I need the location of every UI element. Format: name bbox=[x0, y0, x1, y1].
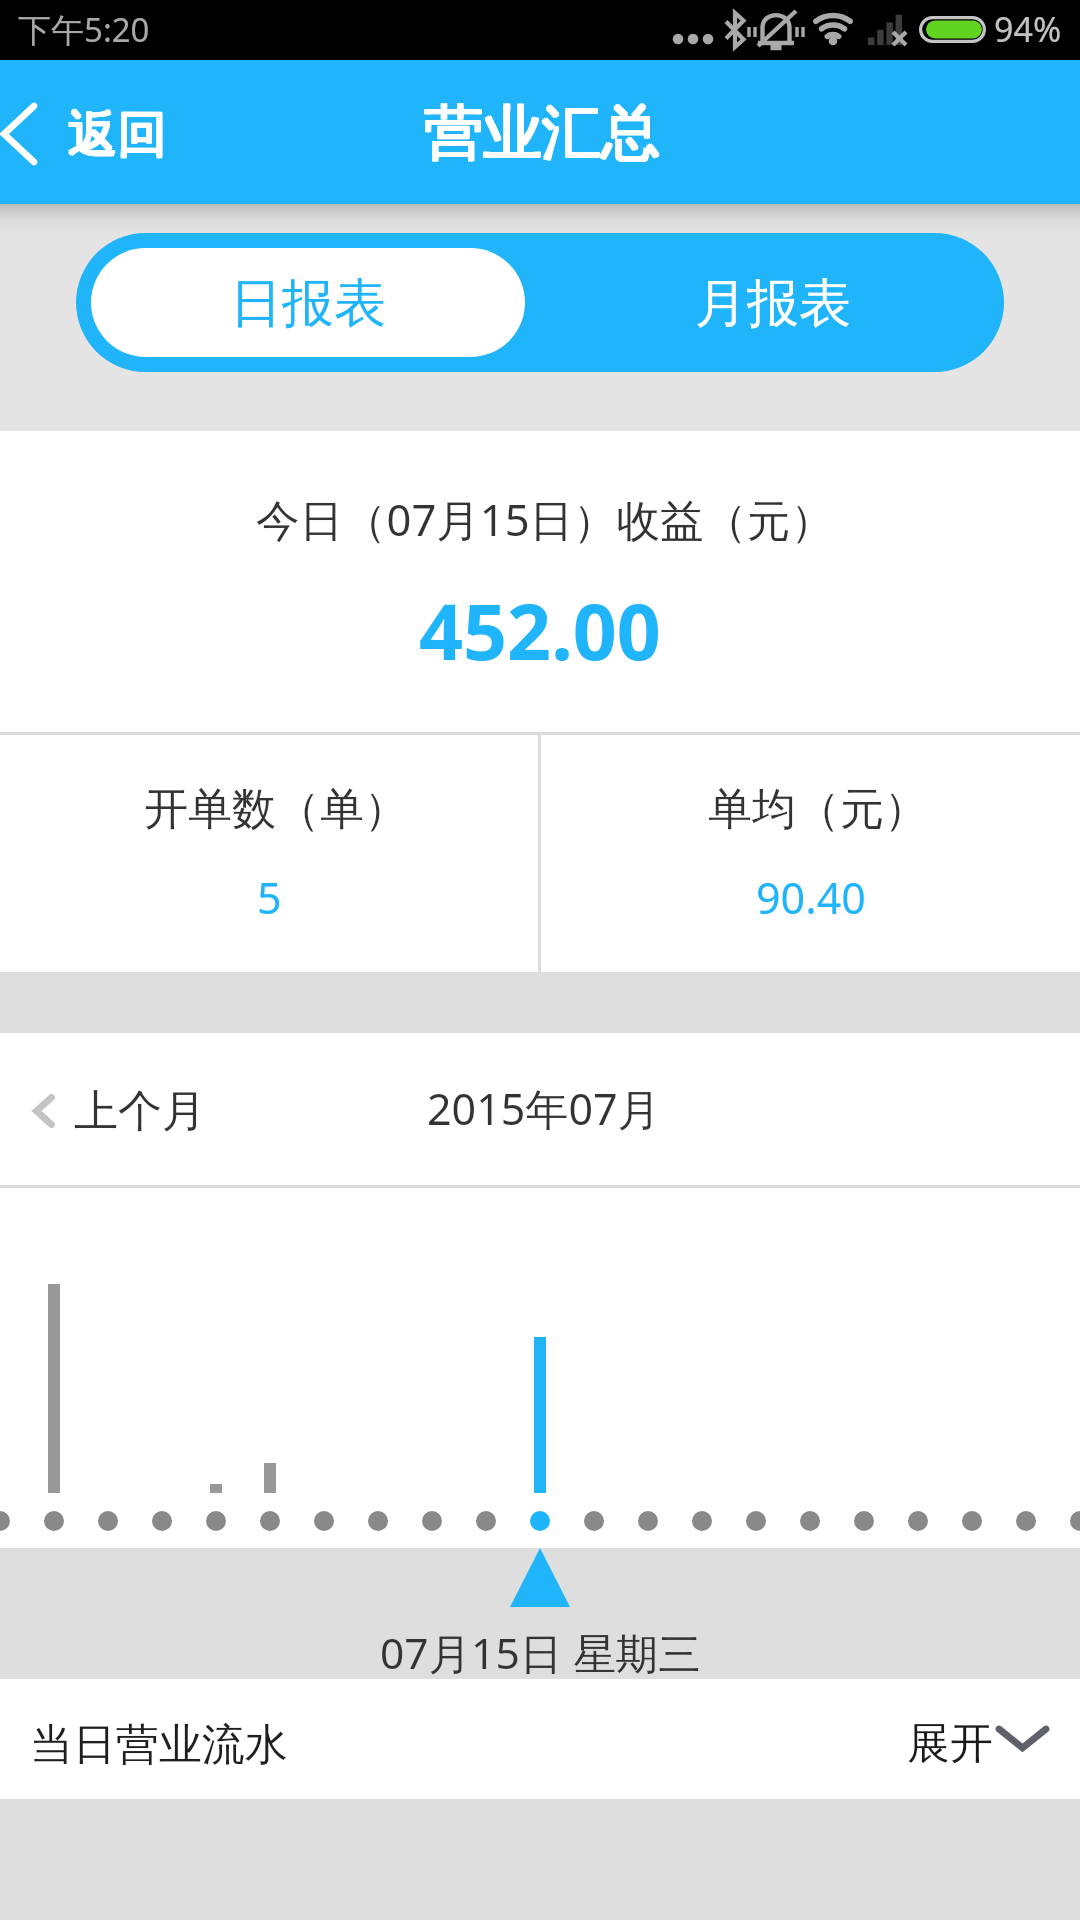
button[interactable]: 月报表 bbox=[540, 248, 989, 357]
staticText: 5 bbox=[257, 868, 282, 927]
staticText: 营业汇总 bbox=[425, 95, 661, 169]
other: Previous month bbox=[33, 1094, 55, 1128]
staticText: 月报表 bbox=[695, 271, 851, 337]
button[interactable]: 单均（元） bbox=[541, 735, 1080, 972]
staticText: 07月15日 星期三 bbox=[380, 1624, 701, 1682]
staticText: 452.00 bbox=[419, 578, 661, 683]
staticText: 营业汇总 bbox=[423, 95, 659, 169]
button[interactable]: Back bbox=[0, 60, 166, 204]
staticText: 返回 bbox=[69, 104, 168, 166]
staticText: 返回 bbox=[67, 104, 166, 166]
staticText: 返回 bbox=[67, 102, 166, 164]
staticText: 上个月 bbox=[74, 1084, 206, 1139]
staticText: 返回 bbox=[69, 102, 168, 164]
staticText: 单均（元） bbox=[708, 782, 928, 837]
staticText: 94% bbox=[994, 6, 1062, 52]
staticText: 日报表 bbox=[230, 271, 386, 337]
staticText: 2015年07月 bbox=[427, 1079, 661, 1138]
other: Back bbox=[1, 103, 37, 165]
button[interactable]: 当日营业流水 bbox=[0, 1679, 1080, 1799]
staticText: 营业汇总 bbox=[425, 97, 661, 171]
staticText: 开单数（单） bbox=[144, 782, 408, 837]
staticText: 营业汇总 bbox=[423, 97, 659, 171]
staticText: 下午5:20 bbox=[18, 7, 150, 52]
staticText: 当日营业流水 bbox=[30, 1718, 288, 1772]
staticText: 展开 bbox=[907, 1717, 993, 1771]
button[interactable]: 日报表 bbox=[91, 248, 525, 357]
staticText: 90.40 bbox=[756, 868, 866, 927]
staticText: 今日（07月15日）收益（元） bbox=[256, 489, 835, 548]
button[interactable]: 开单数（单） bbox=[0, 735, 538, 972]
other: Expand bbox=[996, 1725, 1049, 1753]
button[interactable]: Previous month bbox=[30, 1033, 206, 1188]
